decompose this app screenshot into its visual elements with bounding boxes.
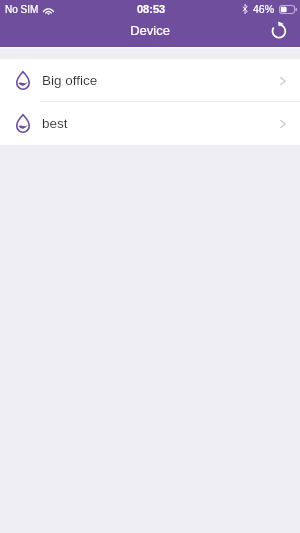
staticText: No SIM: [5, 4, 39, 15]
staticText: 08:53: [137, 3, 166, 15]
button[interactable]: Refresh: [264, 18, 294, 47]
button[interactable]: best: [0, 102, 300, 145]
staticText: best: [42, 116, 68, 131]
staticText: Big office: [42, 73, 98, 88]
staticText: Device: [130, 23, 170, 38]
staticText: 46%: [253, 3, 275, 15]
button[interactable]: Big office: [0, 59, 300, 102]
